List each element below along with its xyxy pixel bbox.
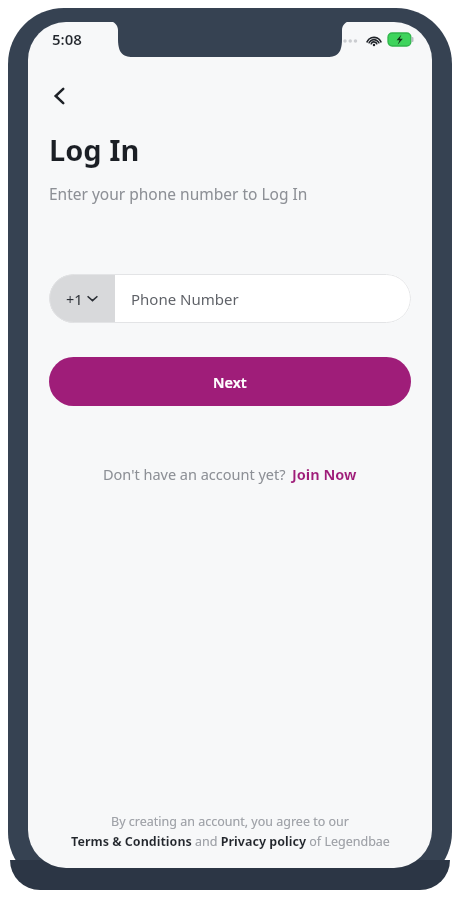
staticText: Join Now bbox=[292, 464, 357, 484]
button[interactable]: Phone Number bbox=[115, 274, 411, 323]
button[interactable]: Terms & Conditions and Privacy policy of… bbox=[71, 833, 390, 850]
button[interactable]: +1 bbox=[49, 274, 115, 323]
staticText: Terms & Conditions and Privacy policy of… bbox=[71, 833, 390, 850]
staticText: Don't have an account yet? bbox=[103, 464, 286, 484]
button[interactable]: Next bbox=[49, 357, 411, 406]
staticText: +1 bbox=[66, 289, 83, 309]
staticText: Enter your phone number to Log In bbox=[49, 183, 308, 204]
staticText: Next bbox=[213, 372, 247, 392]
staticText: 5:08 bbox=[52, 29, 82, 49]
staticText: Log In bbox=[49, 130, 140, 169]
staticText: Phone Number bbox=[131, 289, 239, 309]
button[interactable]: Back bbox=[38, 74, 82, 118]
button[interactable]: Join Now bbox=[286, 464, 357, 484]
staticText: By creating an account, you agree to our bbox=[111, 813, 349, 830]
